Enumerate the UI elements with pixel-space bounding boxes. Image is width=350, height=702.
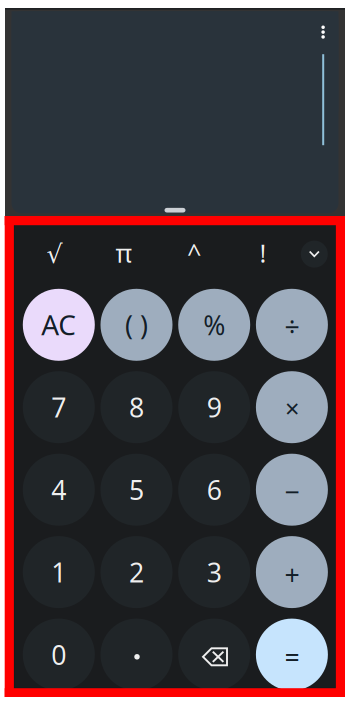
button[interactable]: 3 xyxy=(178,536,250,608)
staticText: ! xyxy=(259,236,266,270)
button[interactable]: 9 xyxy=(178,371,250,443)
button[interactable]: π xyxy=(94,231,154,275)
staticText: 4 xyxy=(51,472,66,507)
button[interactable]: √ xyxy=(24,231,84,275)
staticText: % xyxy=(203,307,225,342)
staticText: 7 xyxy=(51,389,66,425)
staticText: × xyxy=(285,391,299,425)
button[interactable]: 8 xyxy=(100,371,172,443)
button[interactable]: AC xyxy=(23,289,95,361)
button[interactable]: 1 xyxy=(23,536,95,608)
button[interactable]: ^ xyxy=(164,231,224,275)
button[interactable]: 6 xyxy=(178,454,250,526)
button[interactable]: 2 xyxy=(100,536,172,608)
staticText: ÷ xyxy=(284,308,299,343)
staticText: 6 xyxy=(207,472,222,507)
button[interactable]: 4 xyxy=(23,454,95,526)
button[interactable]: % xyxy=(178,289,250,361)
staticText: 0 xyxy=(51,637,66,672)
button[interactable]: × xyxy=(256,371,328,443)
staticText: = xyxy=(284,639,299,674)
button[interactable]: = xyxy=(256,619,328,691)
button[interactable]: ÷ xyxy=(256,289,328,361)
button[interactable]: + xyxy=(256,536,328,608)
button[interactable]: More functions xyxy=(301,241,328,268)
button[interactable]: 5 xyxy=(100,454,172,526)
staticText: AC xyxy=(41,306,76,343)
button[interactable]: 0 xyxy=(23,619,95,691)
button[interactable]: − xyxy=(256,454,328,526)
staticText: ( ) xyxy=(125,307,148,342)
staticText: 8 xyxy=(129,389,144,425)
staticText: − xyxy=(284,473,299,509)
button[interactable]: ( ) xyxy=(100,289,172,361)
button[interactable] xyxy=(100,619,172,691)
staticText: 1 xyxy=(51,554,66,590)
staticText: 5 xyxy=(129,472,144,507)
button[interactable]: 7 xyxy=(23,371,95,443)
staticText: + xyxy=(284,557,299,592)
staticText: π xyxy=(115,236,132,270)
button[interactable]: ! xyxy=(233,231,293,275)
staticText: 3 xyxy=(207,554,222,590)
button[interactable]: More options xyxy=(309,18,337,46)
staticText: ^ xyxy=(187,236,201,270)
staticText: √ xyxy=(46,240,62,268)
staticText: 9 xyxy=(207,389,222,425)
button[interactable] xyxy=(178,619,250,691)
staticText: 2 xyxy=(129,554,144,590)
